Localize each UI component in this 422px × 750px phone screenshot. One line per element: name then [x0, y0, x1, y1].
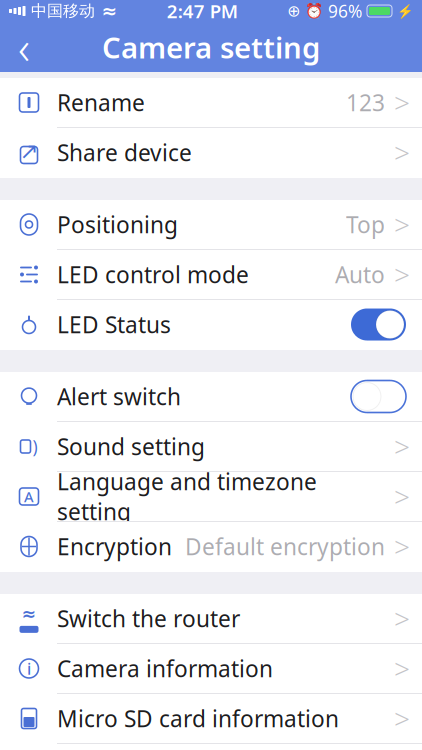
staticText: > — [394, 428, 410, 465]
staticText: Encryption — [57, 531, 172, 561]
staticText: Auto — [335, 259, 385, 289]
staticText: ↗ — [19, 138, 38, 164]
staticText: A — [24, 487, 34, 506]
button[interactable]: ≈ — [0, 594, 422, 644]
staticText: > — [394, 134, 410, 171]
staticText: Alert switch — [57, 381, 181, 411]
button[interactable]: Alert switch — [0, 372, 422, 422]
button[interactable]: Back — [0, 25, 48, 69]
staticText: ) — [32, 435, 37, 458]
button[interactable]: Micro SD card information — [0, 694, 422, 744]
staticText: ⚡ — [397, 3, 414, 19]
staticText: LED control mode — [57, 259, 249, 289]
staticText: Sound setting — [57, 431, 205, 461]
staticText: > — [394, 256, 410, 293]
staticText: Switch the router — [57, 603, 240, 633]
staticText: LED Status — [57, 309, 171, 339]
button[interactable]: Positioning — [0, 200, 422, 250]
button[interactable]: A — [0, 472, 422, 522]
button[interactable]: LED Status — [0, 300, 422, 350]
staticText: Micro SD card information — [57, 703, 339, 733]
button[interactable]: LED control mode — [0, 250, 422, 300]
staticText: ≈ — [21, 604, 36, 624]
staticText: i — [27, 658, 31, 679]
button[interactable]: Toggle on — [351, 308, 406, 340]
staticText: ⏰ — [305, 3, 323, 19]
staticText: Top — [346, 209, 385, 239]
staticText: ≈ — [101, 0, 117, 22]
staticText: > — [394, 528, 410, 565]
staticText: Camera setting — [102, 27, 320, 66]
staticText: Language and timezone setting — [57, 466, 317, 527]
button[interactable]: Rename — [0, 78, 422, 128]
button[interactable]: Toggle off — [351, 380, 406, 412]
staticText: 96% — [328, 0, 362, 22]
staticText: Share device — [57, 137, 192, 167]
staticText: Default encryption — [185, 531, 385, 561]
button[interactable]: ) — [0, 422, 422, 472]
staticText: > — [394, 650, 410, 687]
staticText: ⊕ — [287, 2, 300, 20]
staticText: 中国移动 — [31, 1, 95, 21]
button[interactable]: i — [0, 644, 422, 694]
staticText: Camera information — [57, 653, 273, 683]
button[interactable]: Encryption — [0, 522, 422, 572]
staticText: 2:47 PM — [167, 0, 238, 23]
staticText: ‹ — [18, 17, 30, 77]
staticText: 123 — [346, 87, 385, 117]
staticText: Positioning — [57, 209, 178, 239]
staticText: > — [394, 478, 410, 515]
staticText: > — [394, 206, 410, 243]
staticText: > — [394, 600, 410, 637]
staticText: > — [394, 700, 410, 737]
staticText: Rename — [57, 87, 145, 117]
button[interactable]: ↗ — [0, 128, 422, 178]
staticText: > — [394, 84, 410, 121]
